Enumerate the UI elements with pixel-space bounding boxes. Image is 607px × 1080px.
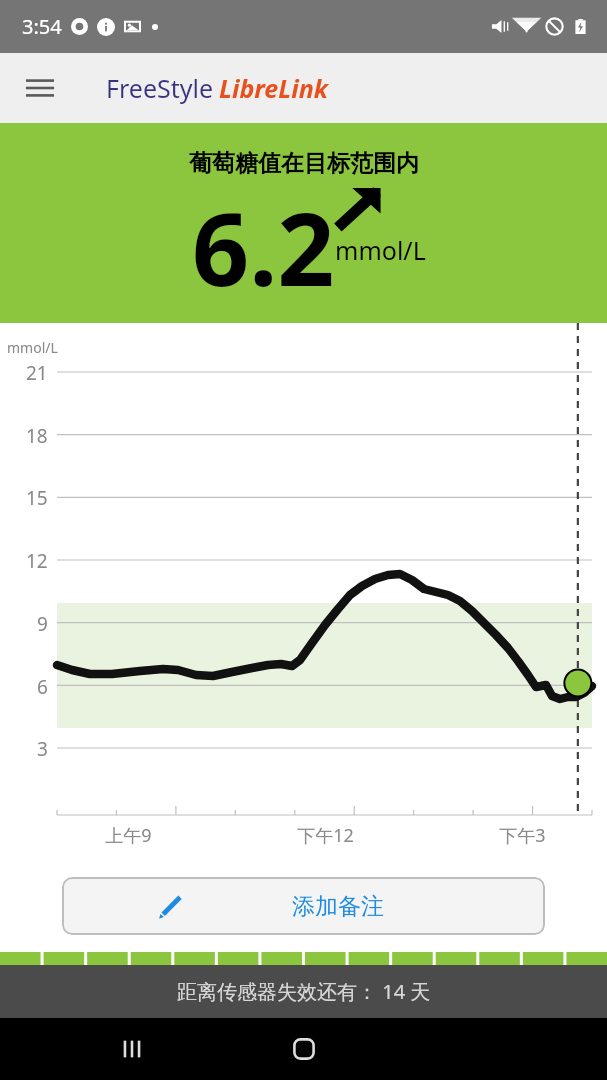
staticText: 添加备注	[292, 892, 384, 921]
staticText: mmol/L	[335, 233, 426, 267]
staticText: 下午3	[499, 823, 546, 848]
staticText: mmol/L	[7, 338, 58, 357]
staticText: 下午12	[297, 823, 354, 848]
staticText: 3:54	[22, 13, 62, 40]
staticText: 18	[26, 423, 48, 449]
staticText: FreeStyle	[106, 71, 214, 105]
button[interactable]: 添加备注	[62, 877, 545, 935]
staticText: 21	[26, 360, 48, 386]
button[interactable]: Menu	[16, 64, 64, 112]
button[interactable]: Home	[280, 1025, 328, 1073]
staticText: 15	[26, 485, 48, 511]
staticText: 6	[37, 674, 48, 700]
button[interactable]: Recents	[108, 1025, 156, 1073]
staticText: 6.2	[192, 179, 335, 315]
staticText: 葡萄糖值在目标范围内	[189, 149, 419, 178]
staticText: 距离传感器失效还有： 14 天	[177, 978, 431, 1005]
button[interactable]: 距离传感器失效还有： 14 天	[0, 965, 607, 1018]
staticText: LibreLink	[219, 71, 329, 105]
staticText: 9	[37, 611, 48, 637]
staticText: 上午9	[105, 823, 152, 848]
staticText: 12	[26, 548, 48, 574]
staticText: 3	[37, 736, 48, 762]
